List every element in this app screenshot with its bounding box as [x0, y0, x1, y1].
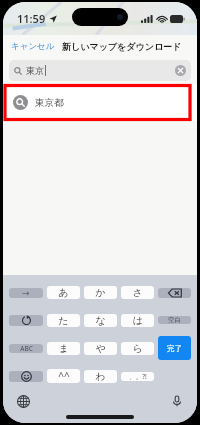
- staticText: 完了: [167, 344, 182, 353]
- button[interactable]: あ: [47, 286, 80, 299]
- staticText: ^^: [58, 369, 70, 383]
- staticText: ら: [132, 342, 143, 355]
- button[interactable]: か: [84, 286, 117, 299]
- staticText: な: [95, 314, 106, 327]
- button[interactable]: は: [121, 314, 154, 327]
- staticText: た: [58, 314, 69, 327]
- button[interactable]: Clear text: [175, 65, 186, 76]
- staticText: 東京都: [35, 97, 64, 109]
- staticText: 空白: [168, 316, 181, 324]
- button[interactable]: ら: [121, 342, 154, 355]
- button[interactable]: や: [84, 342, 117, 355]
- button[interactable]: Delete: [158, 288, 191, 298]
- button[interactable]: Dictation: [167, 391, 187, 411]
- staticText: 新しいマップをダウンロード: [62, 41, 182, 52]
- staticText: ま: [58, 342, 69, 355]
- staticText: わ: [95, 370, 106, 383]
- button[interactable]: 、。?!: [121, 372, 154, 381]
- button[interactable]: な: [84, 314, 117, 327]
- button[interactable]: Undo: [9, 315, 43, 326]
- staticText: キャンセル: [11, 41, 55, 52]
- staticText: 東京: [26, 65, 44, 76]
- staticText: や: [95, 342, 106, 355]
- staticText: 11:59: [17, 11, 46, 26]
- staticText: は: [132, 314, 143, 327]
- button[interactable]: た: [47, 314, 80, 327]
- button[interactable]: ま: [47, 342, 80, 355]
- button[interactable]: ABC: [9, 344, 43, 353]
- button[interactable]: わ: [84, 370, 117, 383]
- button[interactable]: Switch keyboard: [13, 391, 33, 411]
- staticText: か: [95, 286, 106, 299]
- button[interactable]: さ: [121, 286, 154, 299]
- button[interactable]: Next candidate: [9, 288, 43, 298]
- button[interactable]: 完了: [158, 336, 191, 360]
- staticText: さ: [132, 286, 143, 299]
- button[interactable]: Emoji: [9, 371, 43, 382]
- staticText: 、。?!: [129, 372, 147, 381]
- staticText: →: [22, 288, 30, 298]
- button[interactable]: 東京: [9, 60, 191, 81]
- staticText: あ: [58, 286, 69, 299]
- button[interactable]: 空白: [158, 316, 191, 324]
- button[interactable]: ^^: [47, 369, 80, 383]
- button[interactable]: 東京都: [3, 84, 197, 121]
- button[interactable]: キャンセル: [10, 39, 56, 54]
- staticText: ABC: [20, 344, 33, 353]
